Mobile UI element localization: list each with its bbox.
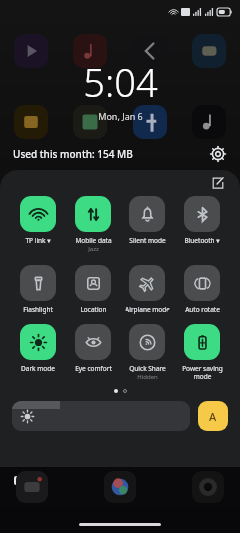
button[interactable]: Bluetooth ▾: [178, 196, 226, 245]
button[interactable]: Silent mode: [123, 196, 171, 245]
staticText: Mon, Jan 6: [98, 110, 143, 122]
staticText: Mobile data: [75, 236, 112, 245]
staticText: Flashlight: [23, 305, 53, 314]
staticText: Bluetooth ▾: [184, 236, 220, 245]
staticText: Hidden: [137, 373, 158, 381]
button[interactable]: Auto rotate: [178, 265, 226, 314]
button[interactable]: Dark mode: [14, 324, 62, 373]
staticText: A: [209, 409, 217, 424]
staticText: Quick Share: [129, 364, 166, 373]
staticText: Silent mode: [129, 236, 166, 245]
staticText: Auto rotate: [185, 305, 220, 314]
staticText: 5:04: [83, 56, 158, 108]
button[interactable]: Edit quick settings: [208, 173, 228, 193]
staticText: Jazz: [88, 245, 99, 253]
staticText: Power saving mode: [182, 364, 223, 381]
button[interactable]: Mobile data: [69, 196, 117, 253]
button[interactable]: Flashlight: [14, 265, 62, 314]
staticText: Airplane mode: [125, 305, 170, 314]
button[interactable]: Quick Share: [123, 324, 171, 381]
staticText: Eye comfort: [75, 364, 112, 373]
button[interactable]: Eye comfort: [69, 324, 117, 373]
button[interactable]: Power saving mode: [178, 324, 226, 381]
button[interactable]: Settings: [208, 144, 228, 164]
staticText: Dark mode: [21, 364, 55, 373]
staticText: Location: [80, 305, 107, 314]
staticText: TP link ▾: [25, 236, 51, 245]
button[interactable]: Auto brightness: [198, 401, 228, 431]
button[interactable]: TP link ▾: [14, 196, 62, 245]
button[interactable]: Brightness: [12, 401, 190, 431]
button[interactable]: Location: [69, 265, 117, 314]
button[interactable]: Airplane mode: [123, 265, 171, 314]
staticText: Used this month: 154 MB: [13, 147, 133, 161]
